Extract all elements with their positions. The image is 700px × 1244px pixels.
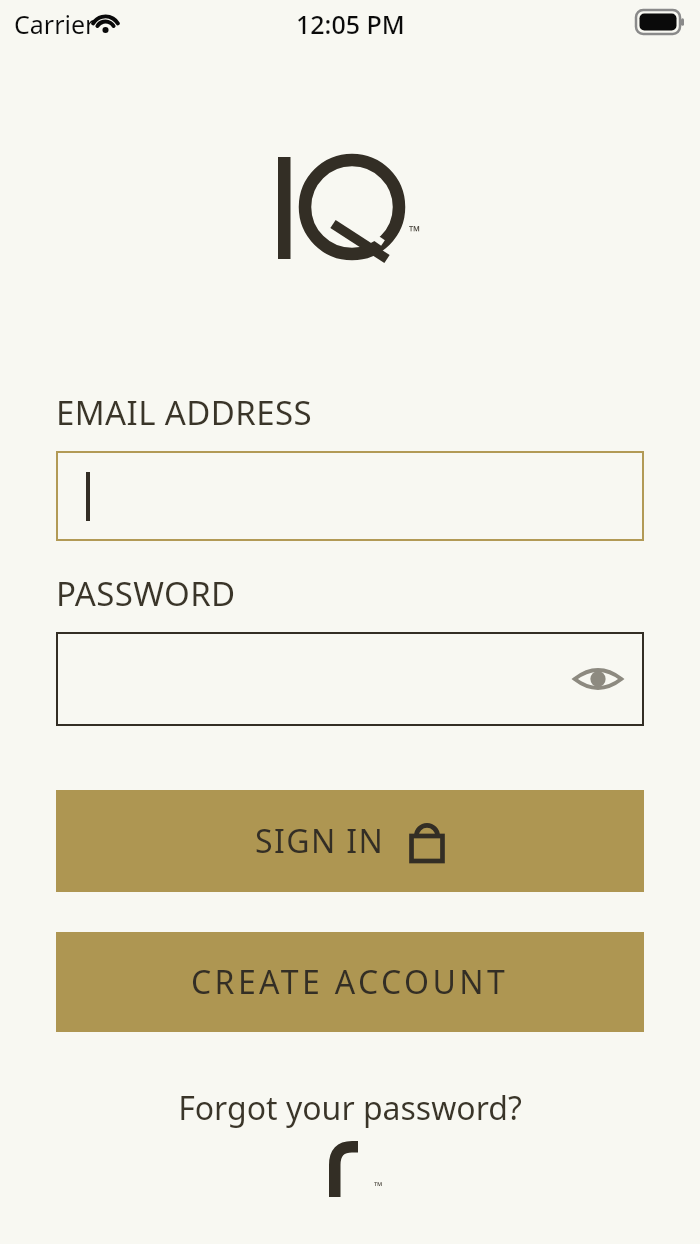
staticText: ™ [374,1178,383,1193]
button[interactable]: Forgot your password? [0,1086,700,1130]
staticText: CREATE ACCOUNT [191,960,509,1004]
button[interactable]: CREATE ACCOUNT [56,932,644,1032]
staticText: ™ [409,221,421,241]
staticText: SIGN IN [255,819,385,863]
staticText: PASSWORD [56,571,236,616]
button[interactable] [56,451,644,541]
button[interactable]: Show password [56,632,644,726]
staticText: 12:05 PM [296,7,405,41]
staticText: Carrier [14,7,96,41]
staticText: EMAIL ADDRESS [56,390,312,435]
button[interactable]: Show password [568,649,628,709]
button[interactable]: SIGN IN [56,790,644,892]
staticText: Forgot your password? [178,1086,522,1130]
